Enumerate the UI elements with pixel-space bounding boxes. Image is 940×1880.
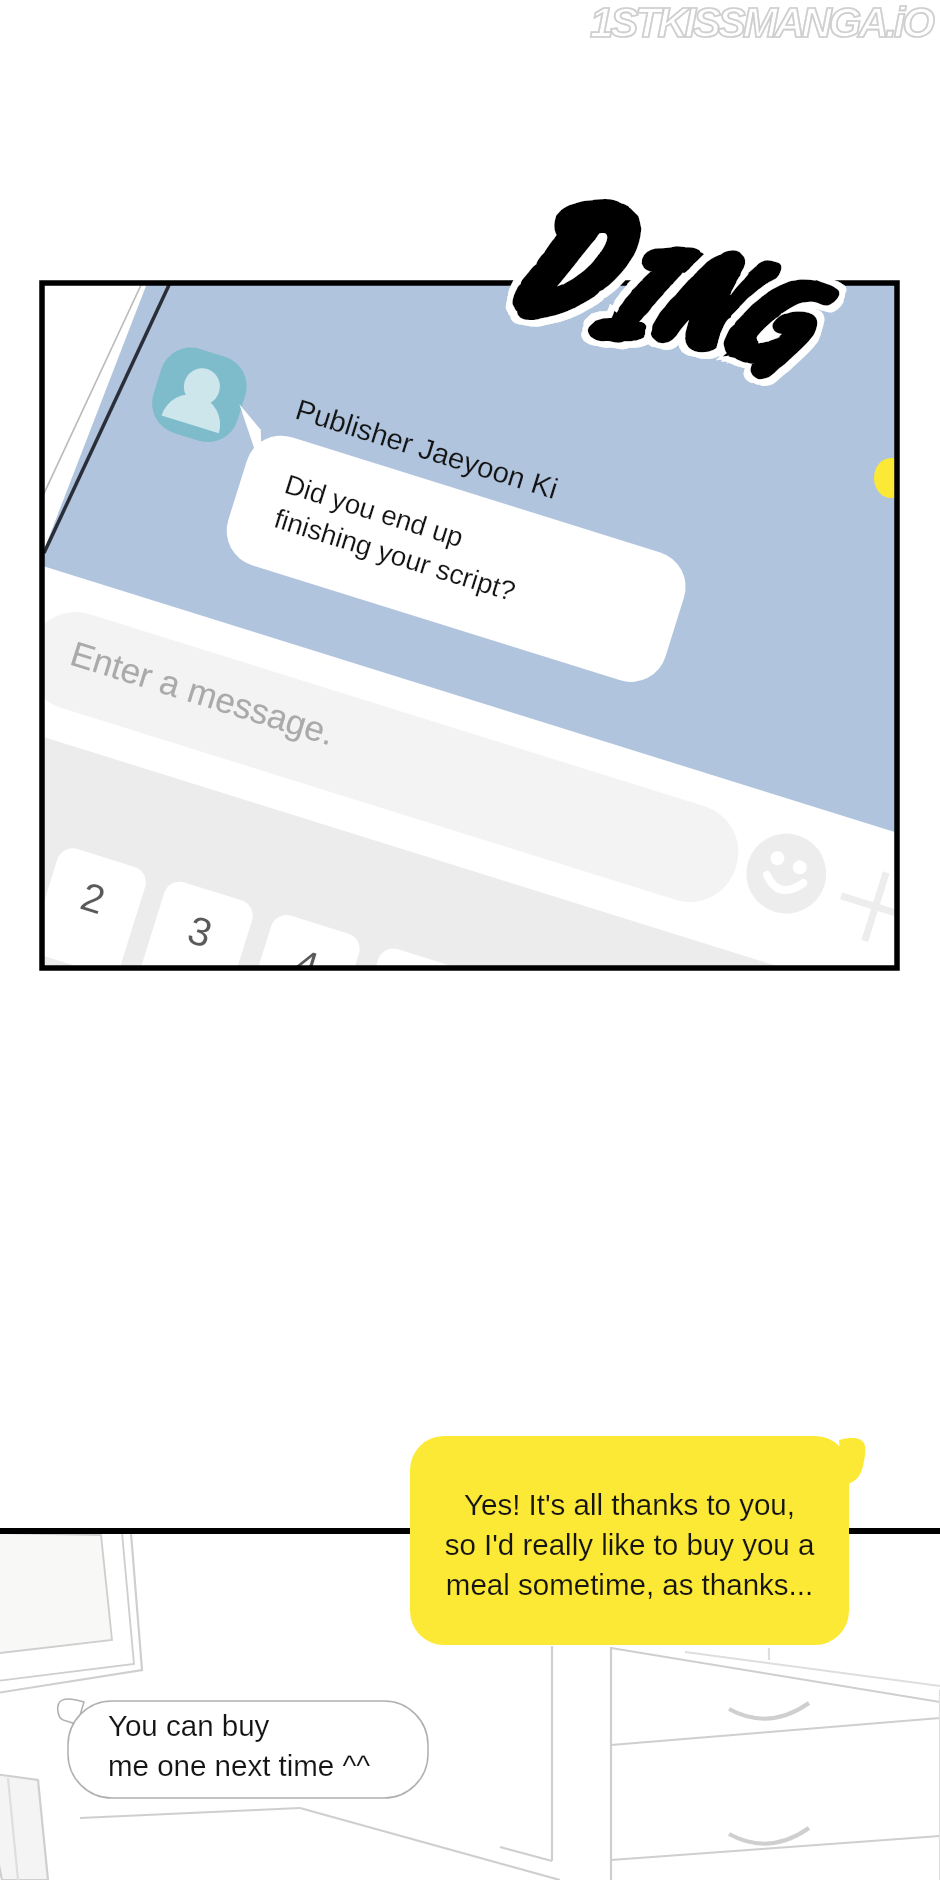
- button[interactable]: Yes! It's all thanks to you, so I'd real…: [410, 1436, 849, 1645]
- button[interactable]: Did you end up finishing your script?: [215, 425, 685, 670]
- staticText: Did you end up finishing your script?: [215, 425, 233, 426]
- button[interactable]: Add attachment: [840, 865, 916, 941]
- button[interactable]: You can buy me one next time ^^: [68, 1701, 428, 1798]
- staticText: You can buy me one next time ^^: [68, 1701, 84, 1702]
- button[interactable]: Chat screen panel: [42, 283, 897, 968]
- button[interactable]: Publisher Jaeyoon Ki avatar: [152, 345, 248, 441]
- button[interactable]: Enter a message.: [44, 612, 844, 732]
- button[interactable]: Emoji: [745, 830, 825, 910]
- staticText: Yes! It's all thanks to you, so I'd real…: [410, 1436, 449, 1437]
